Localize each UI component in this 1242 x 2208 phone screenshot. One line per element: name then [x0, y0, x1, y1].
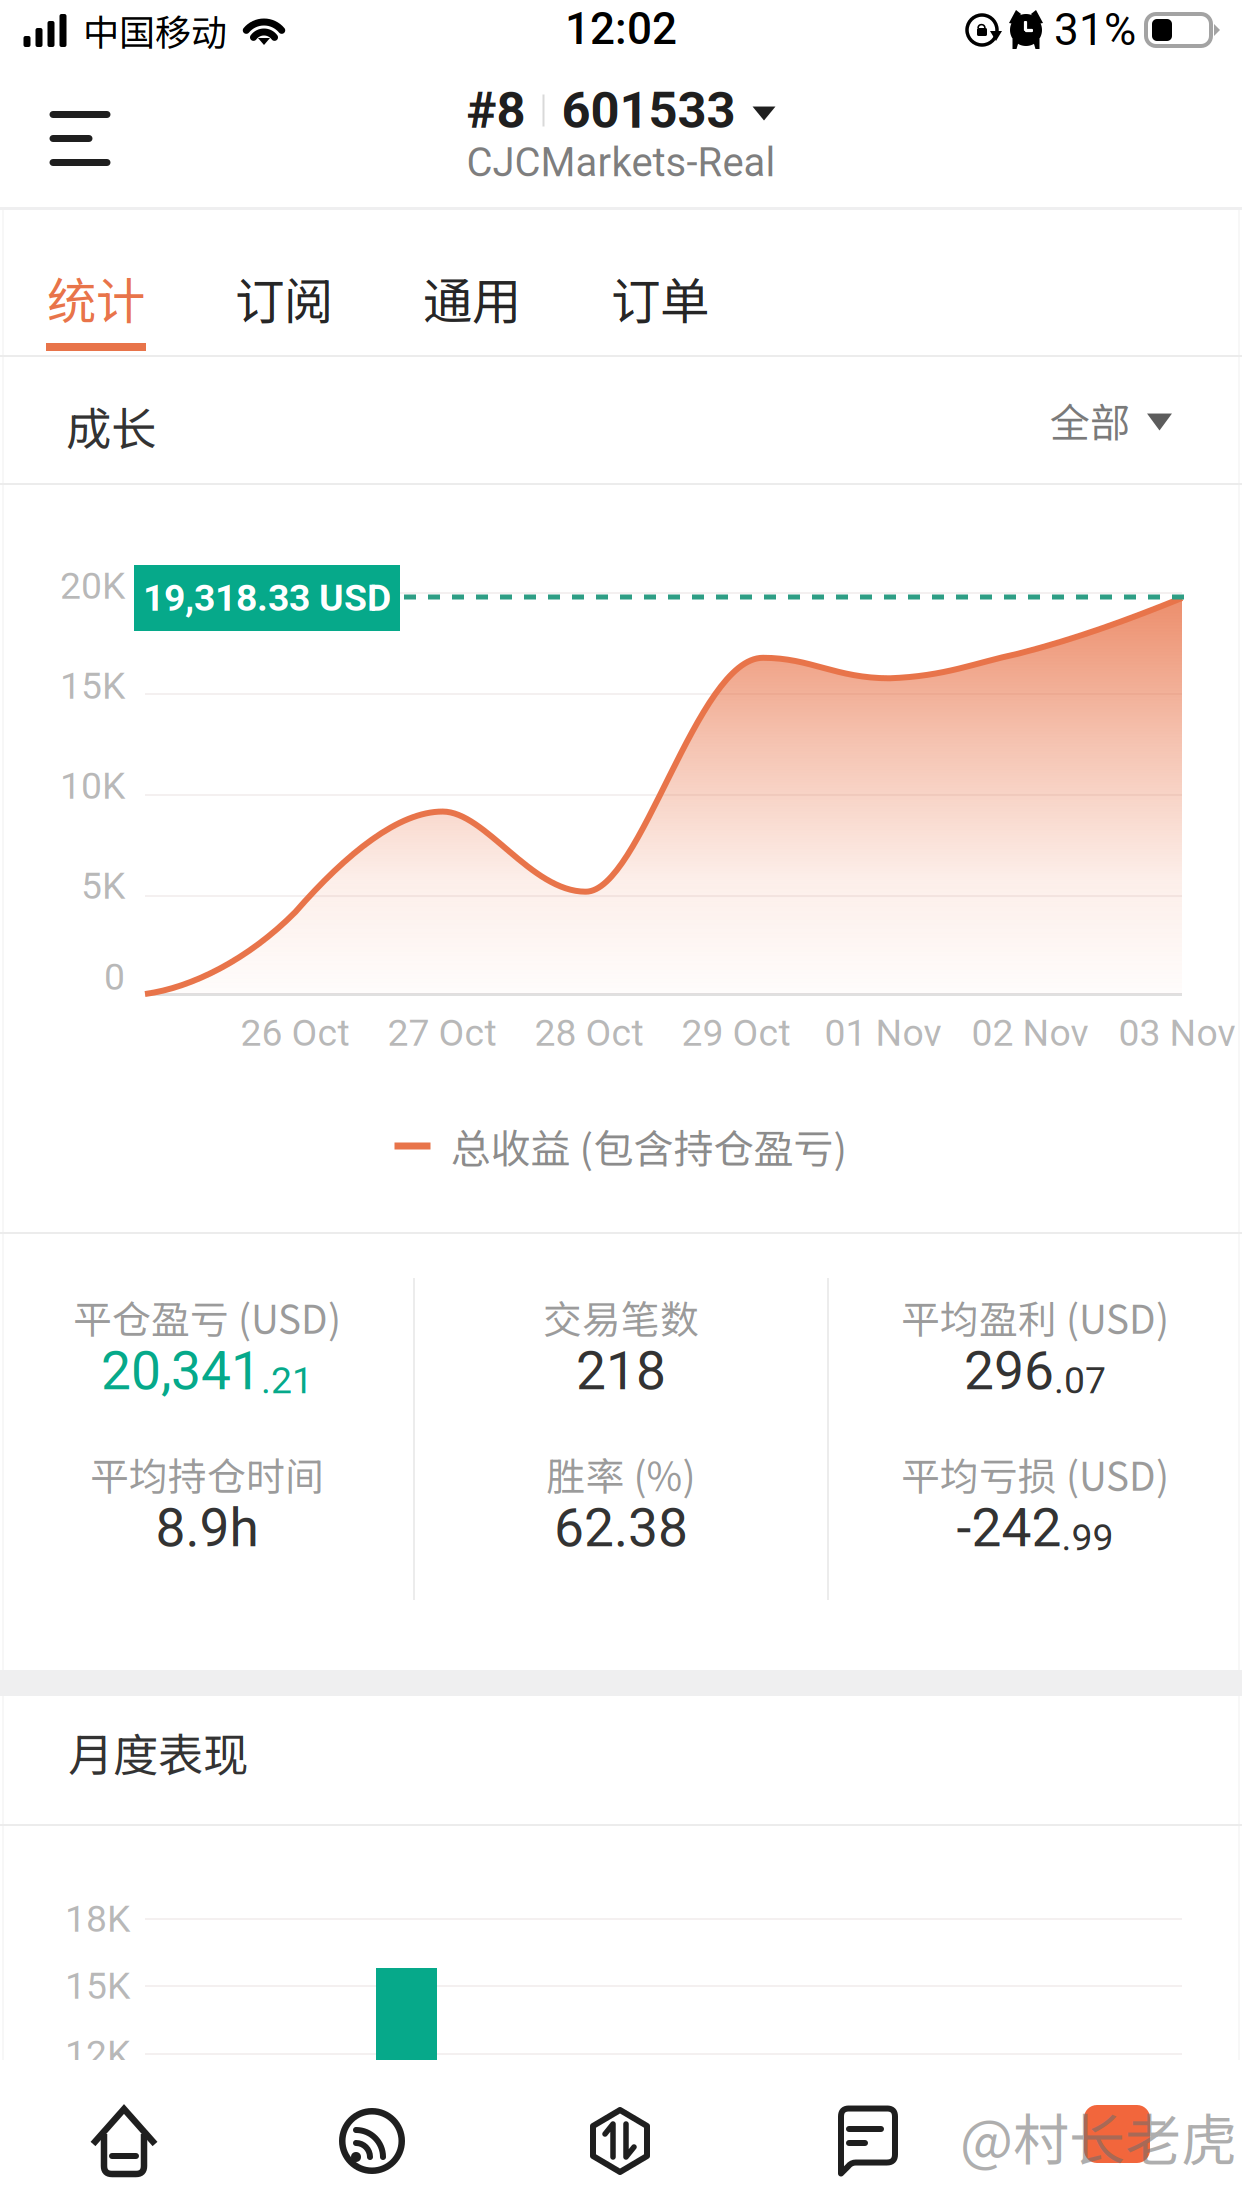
staticText: 通用	[423, 262, 521, 333]
staticText: .07	[1054, 1358, 1106, 1402]
staticText: 29 Oct	[681, 1011, 790, 1055]
staticText: CJCMarkets-Real	[466, 139, 775, 186]
button[interactable]: 订单	[566, 210, 754, 357]
staticText: 27 Oct	[387, 1011, 496, 1055]
staticText: 15K	[65, 1964, 130, 2008]
staticText: 62.38	[554, 1497, 688, 1559]
staticText: 月度表现	[68, 1719, 248, 1785]
staticText: 统计	[47, 262, 145, 333]
staticText: 02 Nov	[971, 1011, 1088, 1055]
staticText: .99	[1061, 1515, 1113, 1559]
staticText: 5K	[81, 864, 125, 908]
staticText: 8.9h	[155, 1497, 258, 1559]
staticText: 平仓盈亏 (USD)	[73, 1289, 341, 1345]
staticText: 18K	[65, 1897, 130, 1941]
staticText: 12K	[65, 2032, 130, 2076]
button[interactable]: 订阅	[248, 2060, 496, 2208]
staticText: 03 Nov	[1118, 1011, 1235, 1055]
button[interactable]: 我的	[992, 2060, 1242, 2208]
button[interactable]: 通用	[378, 210, 566, 357]
staticText: #8	[466, 81, 525, 140]
staticText: 19,318.33 USD	[143, 576, 391, 620]
button[interactable]: 全部	[982, 360, 1208, 480]
button[interactable]: 统计	[2, 210, 190, 357]
button[interactable]: 菜单	[24, 78, 136, 198]
button[interactable]: 消息	[744, 2060, 992, 2208]
button[interactable]: 首页	[0, 2060, 248, 2208]
staticText: 15K	[60, 664, 125, 708]
staticText: 订阅	[235, 262, 333, 333]
staticText: 订单	[611, 262, 709, 333]
staticText: 28 Oct	[534, 1011, 643, 1055]
staticText: 20K	[60, 564, 125, 608]
staticText: 31%	[1054, 4, 1136, 56]
staticText: 26 Oct	[240, 1011, 349, 1055]
staticText: 12:02	[565, 3, 677, 55]
staticText: 成长	[66, 393, 156, 459]
staticText: 平均亏损 (USD)	[901, 1446, 1169, 1502]
staticText: 601533	[561, 81, 735, 140]
staticText: 0	[104, 955, 125, 999]
staticText: 中国移动	[83, 4, 227, 56]
staticText: 总收益 (包含持仓盈亏)	[450, 1117, 847, 1175]
staticText: 296	[964, 1340, 1054, 1402]
button[interactable]: 订阅	[190, 210, 378, 357]
staticText: @村长老虎	[960, 2095, 1237, 2177]
button[interactable]: 交易	[496, 2060, 744, 2208]
staticText: -242	[956, 1497, 1061, 1559]
staticText: 平均持仓时间	[90, 1446, 324, 1502]
staticText: 20,341	[101, 1340, 261, 1402]
staticText: .21	[261, 1358, 313, 1402]
staticText: 218	[576, 1340, 666, 1402]
staticText: 01 Nov	[824, 1011, 941, 1055]
staticText: 全部	[1050, 391, 1130, 449]
staticText: 胜率 (%)	[546, 1446, 695, 1502]
staticText: 平均盈利 (USD)	[901, 1289, 1169, 1345]
staticText: 10K	[60, 764, 125, 808]
staticText: 交易笔数	[543, 1289, 699, 1345]
